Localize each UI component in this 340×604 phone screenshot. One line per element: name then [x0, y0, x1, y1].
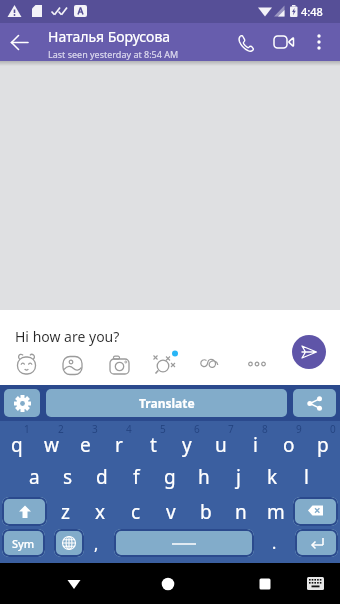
- button[interactable]: [2, 497, 47, 526]
- button[interactable]: l: [289, 458, 323, 495]
- staticText: ,: [94, 533, 99, 555]
- staticText: b: [200, 499, 212, 525]
- staticText: 0: [330, 422, 336, 436]
- button[interactable]: k: [255, 458, 289, 495]
- staticText: 9: [296, 422, 302, 436]
- staticText: m: [267, 499, 285, 525]
- button[interactable]: z: [47, 495, 83, 528]
- staticText: Last seen yesterday at 8:54 AM: [48, 48, 179, 60]
- staticText: 1: [24, 422, 30, 436]
- button[interactable]: [293, 389, 336, 417]
- staticText: g: [164, 464, 176, 490]
- button[interactable]: h: [187, 458, 221, 495]
- staticText: p: [317, 432, 329, 458]
- staticText: y: [182, 432, 192, 458]
- staticText: r: [115, 432, 123, 458]
- staticText: l: [304, 464, 309, 490]
- button[interactable]: [226, 23, 264, 61]
- button[interactable]: o: [272, 421, 306, 458]
- button[interactable]: [4, 389, 40, 417]
- button[interactable]: [54, 563, 94, 604]
- staticText: 6: [194, 422, 200, 436]
- button[interactable]: ,: [84, 528, 114, 557]
- button[interactable]: i: [238, 421, 272, 458]
- staticText: x: [95, 499, 106, 525]
- button[interactable]: [246, 353, 268, 375]
- button[interactable]: d: [85, 458, 119, 495]
- staticText: k: [267, 464, 278, 490]
- button[interactable]: [198, 353, 220, 375]
- button[interactable]: v: [153, 495, 188, 528]
- button[interactable]: m: [258, 495, 293, 528]
- button[interactable]: s: [51, 458, 85, 495]
- button[interactable]: p: [306, 421, 340, 458]
- button[interactable]: f: [119, 458, 153, 495]
- staticText: s: [63, 464, 73, 490]
- button[interactable]: n: [223, 495, 258, 528]
- staticText: 4: [126, 422, 132, 436]
- button[interactable]: Sym: [2, 529, 45, 557]
- button[interactable]: [296, 563, 334, 604]
- staticText: v: [166, 499, 176, 525]
- button[interactable]: b: [188, 495, 223, 528]
- staticText: o: [283, 432, 295, 458]
- staticText: w: [44, 432, 59, 458]
- staticText: 4:48: [301, 4, 323, 19]
- button[interactable]: t: [136, 421, 170, 458]
- staticText: 3: [92, 422, 98, 436]
- staticText: Sym: [12, 536, 35, 551]
- button[interactable]: .: [254, 528, 295, 557]
- staticText: 2: [58, 422, 64, 436]
- staticText: a: [29, 464, 40, 490]
- button[interactable]: c: [118, 495, 153, 528]
- staticText: h: [198, 464, 210, 490]
- staticText: t: [150, 432, 157, 458]
- button[interactable]: [0, 23, 38, 61]
- button[interactable]: a: [17, 458, 51, 495]
- staticText: f: [133, 464, 140, 490]
- staticText: j: [236, 464, 241, 490]
- button[interactable]: q: [0, 421, 34, 458]
- button[interactable]: [15, 353, 37, 375]
- button[interactable]: Translate: [46, 389, 287, 417]
- staticText: 7: [228, 422, 234, 436]
- staticText: d: [96, 464, 108, 490]
- button[interactable]: w: [34, 421, 68, 458]
- staticText: .: [272, 532, 277, 554]
- button[interactable]: [292, 335, 326, 369]
- button[interactable]: [148, 563, 188, 604]
- button[interactable]: [295, 529, 338, 557]
- staticText: e: [80, 432, 91, 458]
- staticText: u: [215, 432, 227, 458]
- button[interactable]: x: [83, 495, 118, 528]
- button[interactable]: j: [221, 458, 255, 495]
- button[interactable]: e: [68, 421, 102, 458]
- button[interactable]: [304, 27, 334, 57]
- staticText: Наталья Борусова: [48, 27, 171, 46]
- button[interactable]: [61, 353, 83, 375]
- button[interactable]: [245, 563, 285, 604]
- button[interactable]: [152, 353, 176, 377]
- button[interactable]: [293, 497, 338, 526]
- staticText: Translate: [139, 395, 195, 411]
- button[interactable]: [114, 529, 254, 557]
- button[interactable]: [54, 529, 84, 557]
- staticText: c: [131, 499, 141, 525]
- button[interactable]: y: [170, 421, 204, 458]
- staticText: Hi how are you?: [15, 327, 120, 346]
- staticText: q: [11, 432, 23, 458]
- staticText: i: [253, 432, 258, 458]
- staticText: 5: [160, 422, 166, 436]
- button[interactable]: u: [204, 421, 238, 458]
- staticText: 8: [262, 422, 268, 436]
- button[interactable]: [264, 23, 304, 61]
- button[interactable]: [108, 353, 130, 375]
- staticText: z: [61, 499, 70, 525]
- staticText: n: [235, 499, 247, 525]
- button[interactable]: g: [153, 458, 187, 495]
- button[interactable]: r: [102, 421, 136, 458]
